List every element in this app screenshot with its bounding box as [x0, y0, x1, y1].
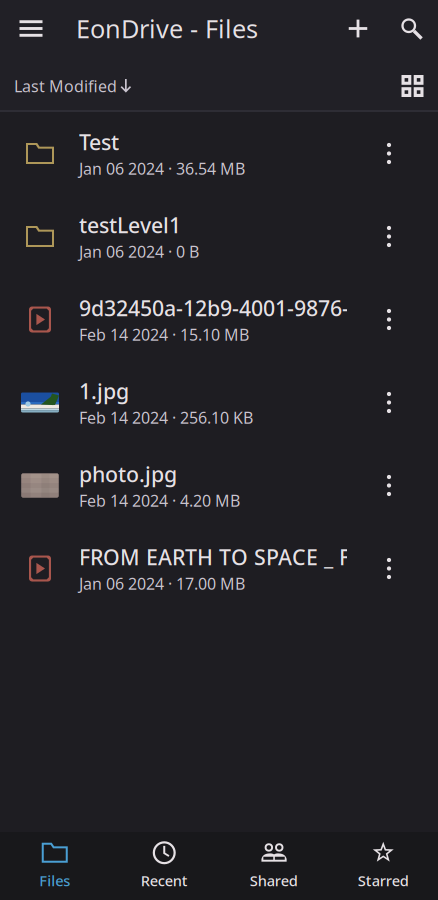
staticText: Feb 14 2024 · 15.10 MB — [79, 324, 249, 345]
staticText: photo.jpg — [79, 460, 177, 488]
staticText: Shared — [250, 871, 298, 890]
staticText: Feb 14 2024 · 256.10 KB — [79, 407, 253, 428]
staticText: 1.jpg — [79, 377, 129, 405]
button[interactable]: Files — [0, 832, 109, 900]
staticText: Files — [39, 871, 70, 890]
staticText: Starred — [358, 871, 409, 890]
staticText: Feb 14 2024 · 4.20 MB — [79, 490, 240, 511]
button[interactable]: Menu — [0, 0, 62, 57]
button[interactable]: Recent — [109, 832, 219, 900]
button[interactable]: Starred — [328, 832, 438, 900]
button[interactable]: FROM EARTH TO SPACE _ Free — [0, 527, 438, 610]
button[interactable]: Test — [0, 112, 438, 195]
staticText: Jan 06 2024 · 0 B — [79, 241, 199, 262]
staticText: Recent — [141, 871, 188, 890]
button[interactable]: photo.jpg — [0, 444, 438, 527]
button[interactable]: Grid view — [387, 54, 438, 112]
staticText: testLevel1 — [79, 211, 181, 239]
staticText: EonDrive - Files — [76, 12, 258, 45]
staticText: Jan 06 2024 · 36.54 MB — [79, 158, 245, 179]
button[interactable]: 9d32450a-12b9-4001-9876-5f4 — [0, 278, 438, 361]
button[interactable]: Search — [385, 0, 438, 57]
button[interactable]: testLevel1 — [0, 195, 438, 278]
staticText: Jan 06 2024 · 17.00 MB — [79, 573, 245, 594]
button[interactable]: Shared — [219, 832, 328, 900]
button[interactable]: 1.jpg — [0, 361, 438, 444]
button[interactable]: Last Modified — [0, 57, 144, 110]
staticText: FROM EARTH TO SPACE _ Free — [79, 543, 383, 571]
button[interactable]: Add — [331, 0, 385, 57]
staticText: Last Modified — [14, 75, 117, 97]
staticText: 9d32450a-12b9-4001-9876-5f4 — [79, 294, 381, 322]
staticText: Test — [79, 128, 119, 156]
